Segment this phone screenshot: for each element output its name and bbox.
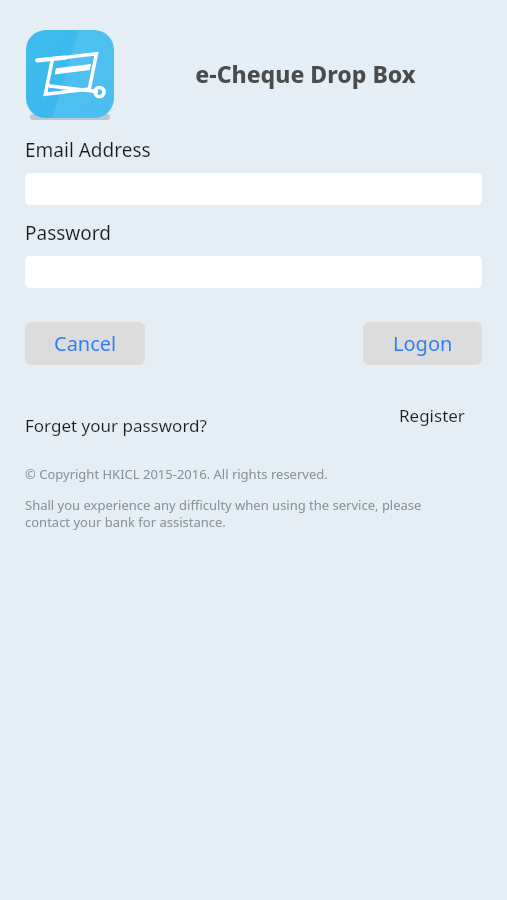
staticText: Password: [25, 220, 111, 246]
button[interactable]: Forget your password?: [22, 412, 210, 439]
staticText: Forget your password?: [25, 414, 207, 437]
other: e-Cheque Drop Box app icon: [26, 30, 114, 118]
staticText: Shall you experience any difficulty when…: [25, 496, 457, 531]
staticText: Email Address: [25, 137, 151, 163]
button[interactable]: Register: [396, 402, 468, 429]
staticText: Logon: [393, 330, 453, 357]
staticText: © Copyright HKICL 2015-2016. All rights …: [25, 465, 328, 483]
staticText: Cancel: [54, 330, 117, 357]
staticText: Register: [399, 404, 465, 427]
staticText: e-Cheque Drop Box: [195, 58, 416, 89]
button[interactable]: Cancel: [25, 322, 145, 365]
button[interactable]: Logon: [363, 322, 482, 365]
